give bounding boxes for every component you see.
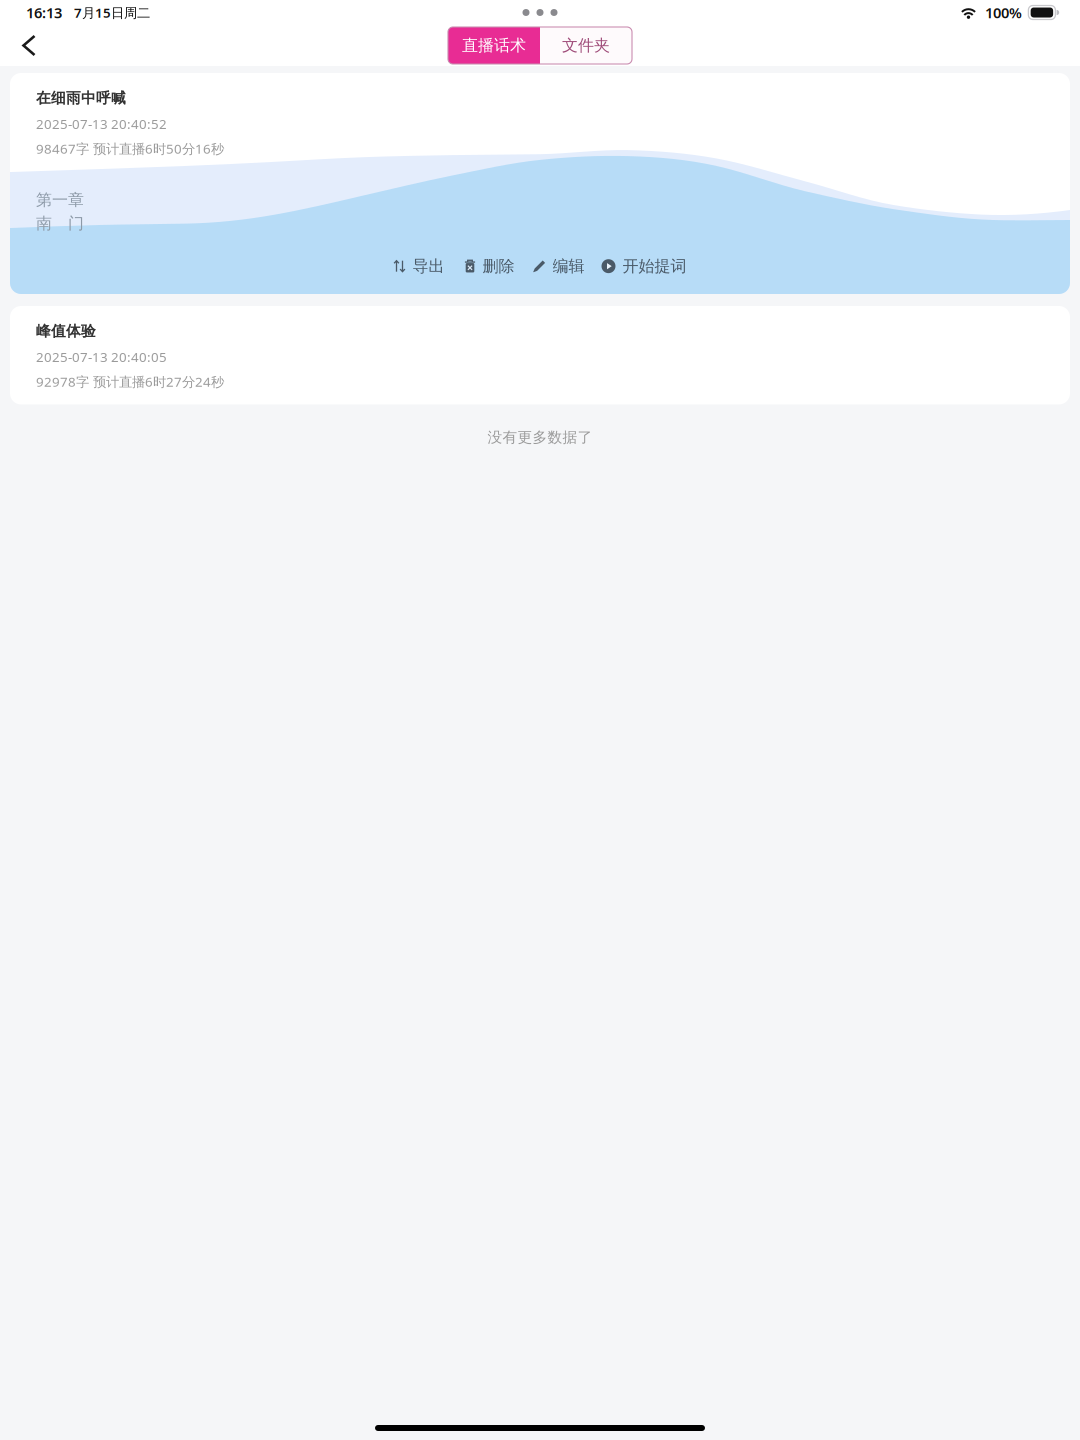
staticText: 第一章 <box>36 190 84 210</box>
button[interactable]: 编辑 <box>530 250 586 282</box>
button[interactable]: 文件夹 <box>540 27 632 64</box>
staticText: 2025-07-13 20:40:52 <box>36 115 167 133</box>
staticText: 南 门 <box>36 214 84 233</box>
button[interactable]: 直播话术 <box>448 27 540 64</box>
button[interactable]: 删除 <box>462 250 516 282</box>
staticText: 峰值体验 <box>36 322 96 340</box>
staticText: 文件夹 <box>562 36 610 55</box>
staticText: 导出 <box>412 256 444 276</box>
staticText: 92978字 预计直播6时27分24秒 <box>36 373 224 390</box>
staticText: 16:13 <box>26 3 62 22</box>
staticText: 98467字 预计直播6时50分16秒 <box>36 140 224 157</box>
staticText: 没有更多数据了 <box>487 428 592 446</box>
button[interactable]: 开始提词 <box>599 250 688 282</box>
staticText: 开始提词 <box>622 256 686 276</box>
staticText: 2025-07-13 20:40:05 <box>36 348 167 366</box>
staticText: 100% <box>985 3 1022 22</box>
button[interactable]: Back <box>0 25 50 65</box>
staticText: 删除 <box>482 256 514 276</box>
staticText: 7月15日周二 <box>74 4 150 21</box>
staticText: 编辑 <box>552 256 584 276</box>
button[interactable]: 导出 <box>391 250 446 282</box>
staticText: 在细雨中呼喊 <box>36 89 126 107</box>
staticText: 直播话术 <box>462 36 526 55</box>
